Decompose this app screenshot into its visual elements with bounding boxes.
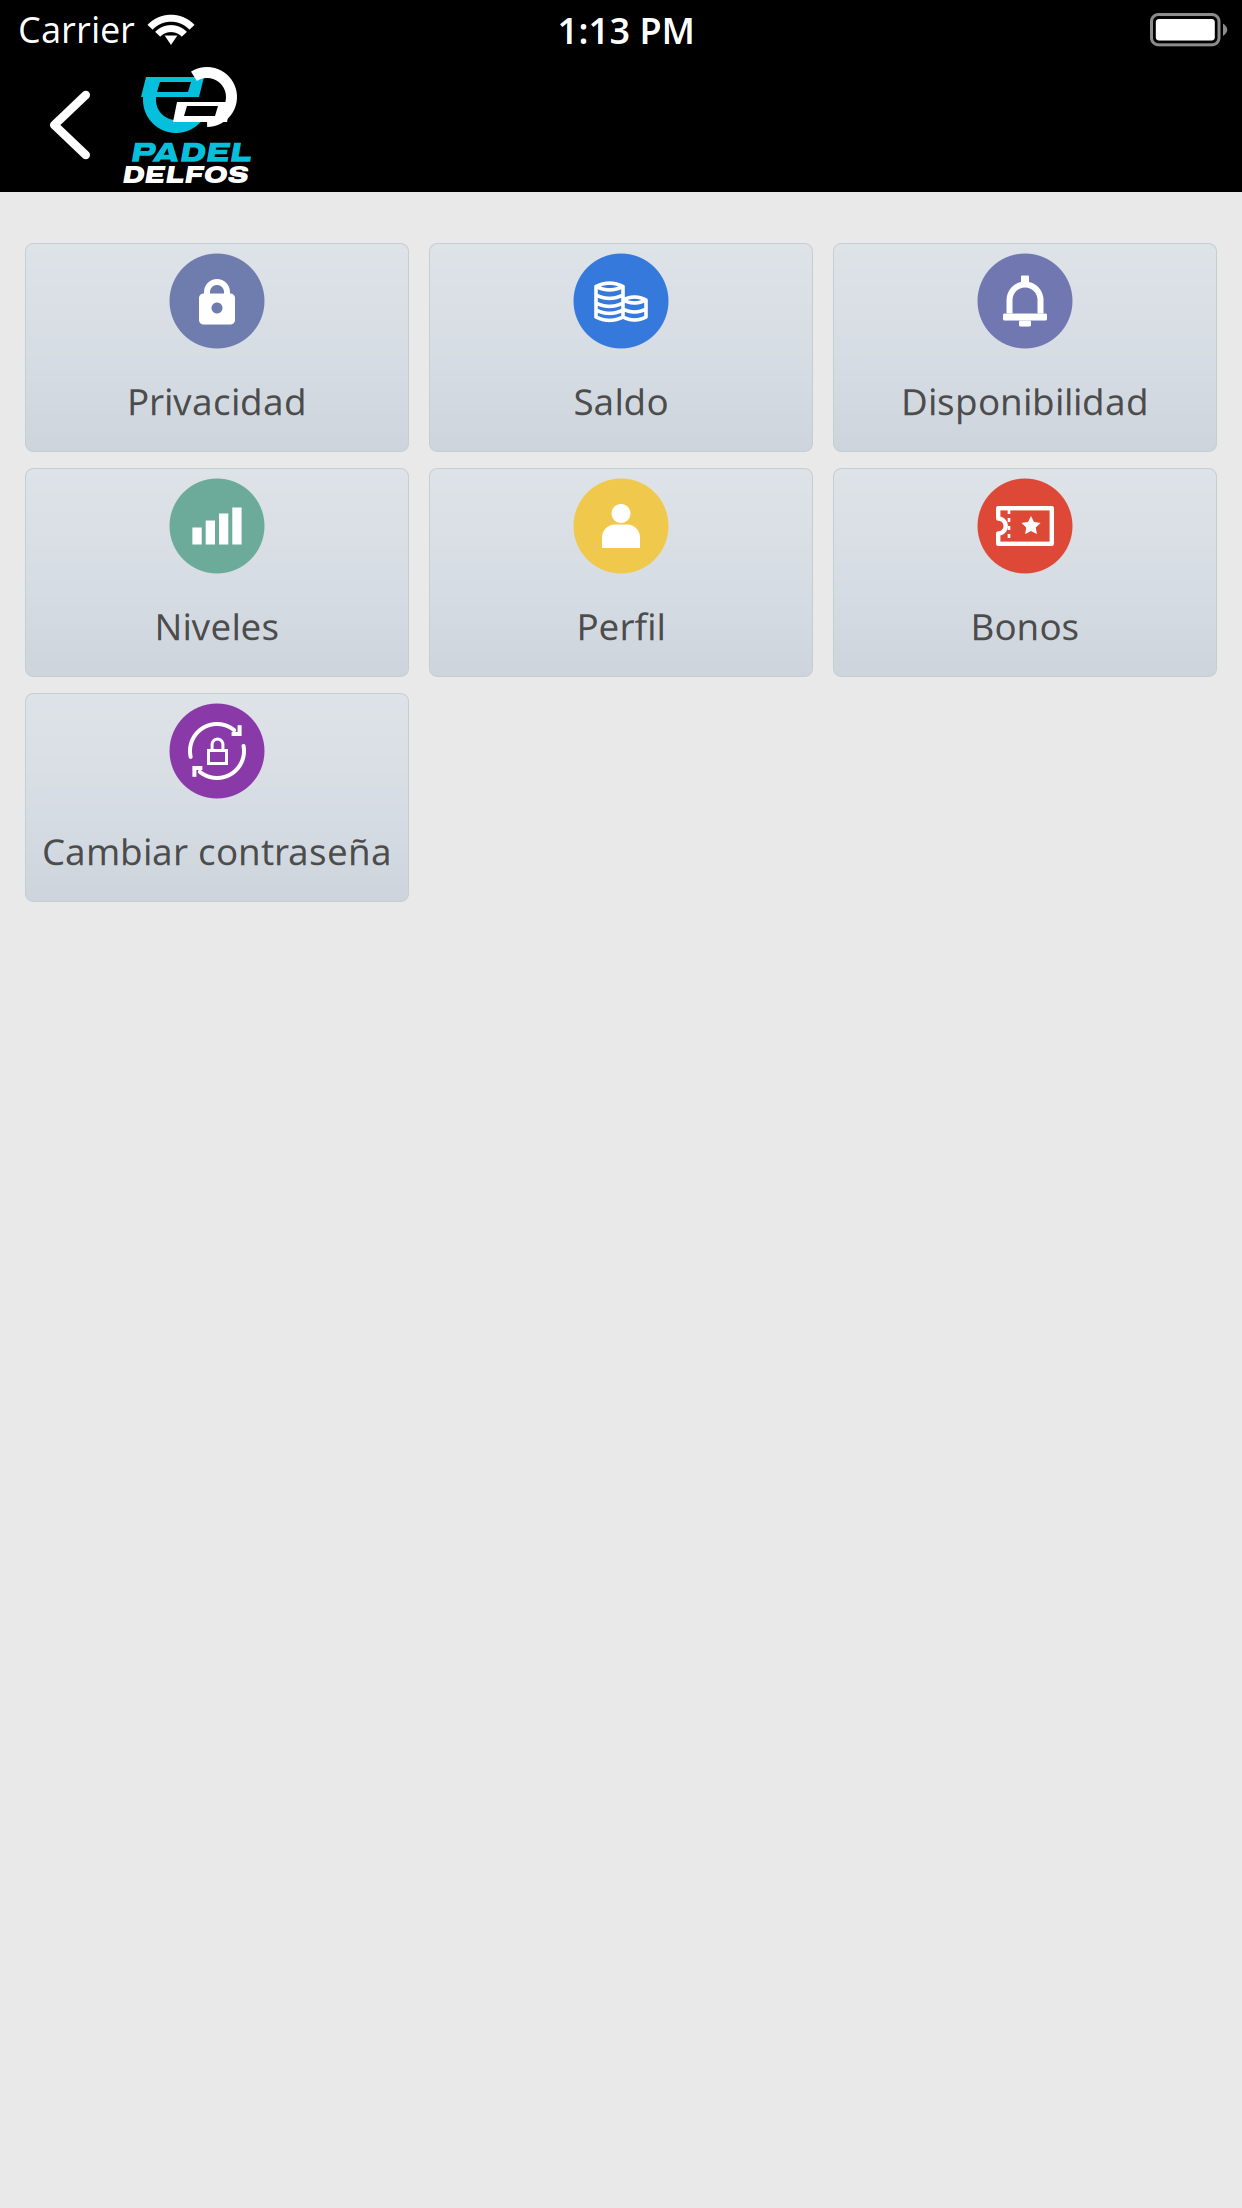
staticText: Privacidad [127, 377, 307, 425]
staticText: Disponibilidad [901, 377, 1149, 425]
button[interactable]: Cambiar contraseña [25, 693, 409, 902]
staticText: Bonos [970, 602, 1079, 650]
staticText: Saldo [573, 377, 668, 425]
button[interactable]: Disponibilidad [833, 243, 1217, 452]
staticText: 1:13 PM [557, 6, 694, 54]
button[interactable]: Back [34, 76, 106, 174]
staticText: Carrier [18, 5, 135, 53]
button[interactable]: Privacidad [25, 243, 409, 452]
button[interactable]: Bonos [833, 468, 1217, 677]
staticText: PADEL [131, 137, 252, 168]
staticText: Perfil [576, 602, 665, 650]
button[interactable]: Perfil [429, 468, 813, 677]
button[interactable]: Saldo [429, 243, 813, 452]
staticText: DELFOS [122, 162, 248, 188]
button[interactable]: Niveles [25, 468, 409, 677]
staticText: Niveles [154, 602, 279, 650]
staticText: Cambiar contraseña [42, 827, 392, 875]
